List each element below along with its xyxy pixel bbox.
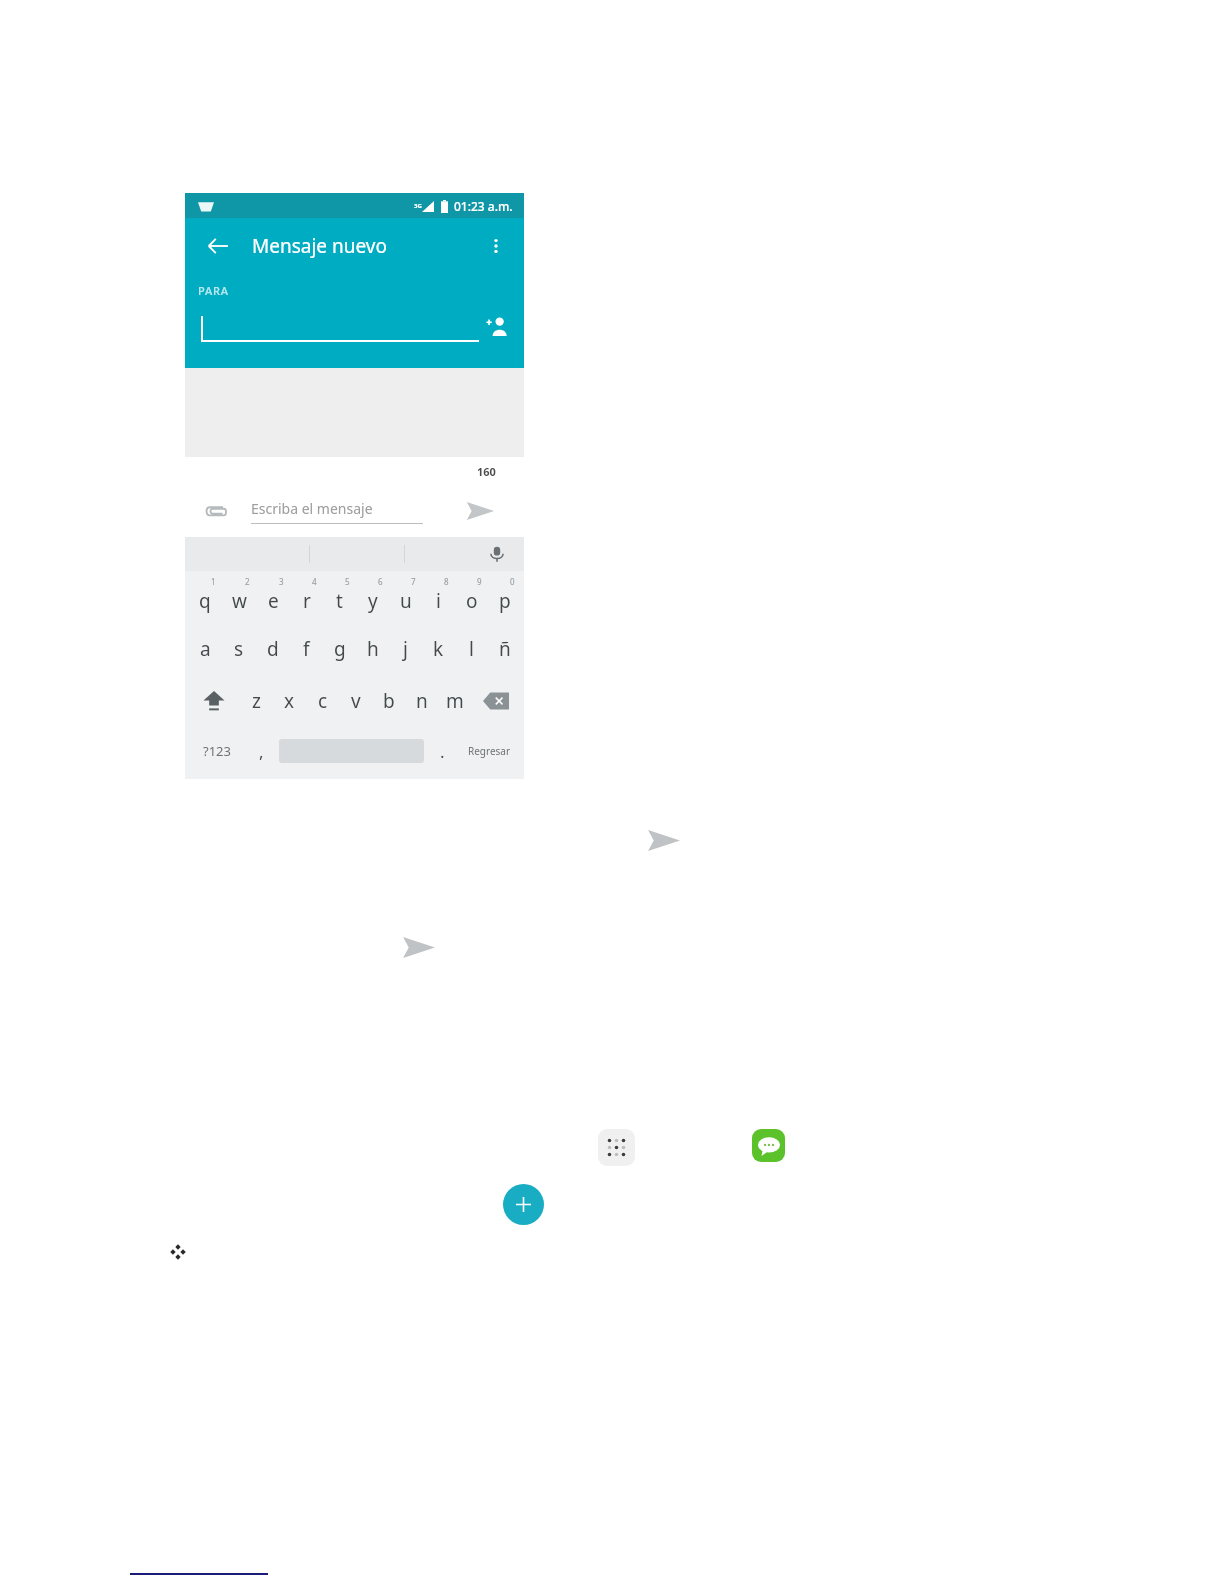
button[interactable]: 4 xyxy=(290,571,323,623)
button[interactable]: f xyxy=(290,623,323,675)
button[interactable]: Note xyxy=(166,1240,190,1264)
staticText: 6 xyxy=(378,576,383,587)
staticText: . xyxy=(440,740,445,763)
button[interactable]: n xyxy=(405,675,438,727)
button[interactable]: z xyxy=(239,675,273,727)
button[interactable]: Messages xyxy=(752,1129,785,1162)
button[interactable]: Back xyxy=(198,226,238,266)
staticText: 0 xyxy=(510,576,515,587)
staticText: b xyxy=(383,688,395,714)
staticText: g xyxy=(334,636,346,662)
button[interactable]: g xyxy=(323,623,356,675)
button[interactable]: Attach xyxy=(197,492,235,530)
button[interactable]: 3 xyxy=(256,571,290,623)
staticText: 7 xyxy=(411,576,416,587)
button[interactable]: d xyxy=(256,623,290,675)
staticText: q xyxy=(199,588,211,614)
button[interactable]: Regresar xyxy=(458,727,520,775)
button[interactable]: 2 xyxy=(222,571,256,623)
button[interactable]: New message xyxy=(503,1184,544,1225)
button[interactable]: 7 xyxy=(389,571,422,623)
button[interactable]: Apps xyxy=(598,1129,635,1166)
button[interactable]: . xyxy=(426,727,458,775)
staticText: 8 xyxy=(444,576,449,587)
staticText: 4 xyxy=(312,576,317,587)
button[interactable]: Send xyxy=(641,818,685,862)
staticText: Escriba el mensaje xyxy=(251,499,373,518)
button[interactable]: a xyxy=(188,623,222,675)
button[interactable]: 8 xyxy=(422,571,455,623)
staticText: 2 xyxy=(245,576,250,587)
button[interactable]: 5 xyxy=(323,571,356,623)
button[interactable]: More options xyxy=(478,228,514,264)
staticText: m xyxy=(446,688,464,714)
staticText: 5 xyxy=(345,576,350,587)
button[interactable]: , xyxy=(245,727,277,775)
button[interactable]: Add contact xyxy=(480,309,514,343)
staticText: 01:23 a.m. xyxy=(454,198,513,214)
staticText: j xyxy=(403,636,408,662)
staticText: i xyxy=(436,588,441,614)
button[interactable]: ?123 xyxy=(189,727,245,775)
button[interactable]: k xyxy=(422,623,455,675)
staticText: Regresar xyxy=(468,744,511,758)
staticText: 9 xyxy=(477,576,482,587)
staticText: u xyxy=(400,588,412,614)
button[interactable]: h xyxy=(356,623,389,675)
staticText: w xyxy=(232,588,247,614)
button[interactable]: 9 xyxy=(455,571,488,623)
staticText: o xyxy=(466,588,478,614)
staticText: k xyxy=(433,636,444,662)
staticText: c xyxy=(318,688,328,714)
button[interactable]: m xyxy=(438,675,471,727)
staticText: r xyxy=(303,588,311,614)
staticText: z xyxy=(252,688,261,714)
button[interactable]: Voice input xyxy=(484,541,510,567)
staticText: x xyxy=(284,688,295,714)
button[interactable]: s xyxy=(222,623,256,675)
button[interactable]: Escriba el mensaje xyxy=(251,499,423,524)
staticText: Mensaje nuevo xyxy=(252,233,387,259)
button[interactable]: Shift xyxy=(188,675,239,727)
button[interactable]: Send xyxy=(396,925,440,969)
staticText: ñ xyxy=(499,636,511,662)
button[interactable]: j xyxy=(389,623,422,675)
staticText: e xyxy=(268,588,279,614)
staticText: ?123 xyxy=(203,742,231,760)
button[interactable]: Backspace xyxy=(471,675,521,727)
button[interactable]: b xyxy=(372,675,405,727)
staticText: h xyxy=(367,636,379,662)
staticText: s xyxy=(234,636,244,662)
staticText: t xyxy=(336,588,343,614)
staticText: y xyxy=(368,588,378,614)
button[interactable]: 0 xyxy=(488,571,521,623)
staticText: 3G xyxy=(414,202,422,210)
staticText: 3 xyxy=(279,576,284,587)
staticText: n xyxy=(416,688,428,714)
staticText: a xyxy=(200,636,211,662)
staticText: 1 xyxy=(211,576,216,587)
staticText: f xyxy=(303,636,310,662)
staticText: 160 xyxy=(477,464,496,479)
staticText: v xyxy=(351,688,361,714)
staticText: PARA xyxy=(198,283,229,298)
button[interactable]: 6 xyxy=(356,571,389,623)
button[interactable]: l xyxy=(455,623,488,675)
staticText: d xyxy=(267,636,279,662)
staticText: , xyxy=(259,740,264,763)
button[interactable]: 1 xyxy=(188,571,222,623)
staticText: p xyxy=(499,588,511,614)
button[interactable]: Send xyxy=(460,491,500,531)
button[interactable]: x xyxy=(273,675,306,727)
button[interactable]: ñ xyxy=(488,623,521,675)
staticText: l xyxy=(469,636,474,662)
button[interactable]: v xyxy=(339,675,372,727)
button[interactable]: c xyxy=(306,675,339,727)
